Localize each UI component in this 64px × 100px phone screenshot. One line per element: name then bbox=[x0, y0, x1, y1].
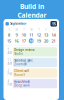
staticText: 12 bbox=[37, 32, 41, 38]
staticText: 11 bbox=[29, 32, 33, 38]
staticText: Client call bbox=[14, 69, 29, 73]
staticText: 17 bbox=[22, 38, 26, 43]
staticText: 11 AM bbox=[7, 58, 11, 65]
button[interactable]: 9 AM bbox=[5, 47, 57, 56]
staticText: September bbox=[10, 22, 26, 25]
button[interactable]: Calendar bbox=[5, 22, 9, 25]
staticText: Standup sync bbox=[14, 59, 32, 62]
staticText: 9 bbox=[15, 32, 17, 38]
staticText: Focus block bbox=[14, 80, 30, 83]
staticText: 4 PM bbox=[7, 79, 11, 87]
staticText: 15 bbox=[52, 21, 56, 26]
staticText: Build in bbox=[20, 2, 44, 11]
button[interactable]: 2 PM bbox=[5, 68, 57, 78]
staticText: 2 PM bbox=[7, 69, 11, 76]
staticText: Calendar bbox=[17, 11, 46, 20]
staticText: 10 bbox=[22, 32, 26, 38]
staticText: T bbox=[38, 28, 39, 32]
staticText: T bbox=[23, 28, 24, 32]
staticText: Deep work bbox=[14, 84, 29, 87]
staticText: S bbox=[8, 28, 9, 32]
staticText: 15 bbox=[7, 38, 11, 43]
staticText: M bbox=[15, 28, 17, 32]
staticText: 13 bbox=[44, 32, 48, 38]
staticText: Zoom call bbox=[14, 63, 27, 66]
staticText: 19 bbox=[37, 38, 41, 43]
staticText: S bbox=[53, 28, 54, 32]
staticText: 18 bbox=[29, 38, 33, 43]
staticText: 14 bbox=[51, 32, 55, 38]
button[interactable]: 11 AM bbox=[5, 58, 57, 67]
staticText: F bbox=[46, 28, 47, 32]
staticText: Room 3 bbox=[14, 73, 25, 77]
staticText: 20 bbox=[44, 38, 48, 43]
staticText: 8 bbox=[8, 32, 10, 38]
staticText: Studio bbox=[14, 52, 23, 55]
button[interactable]: 4 PM bbox=[5, 79, 57, 88]
staticText: 16 bbox=[14, 38, 18, 43]
staticText: Design review bbox=[14, 48, 34, 52]
staticText: W bbox=[30, 28, 32, 32]
button[interactable]: Today bbox=[50, 21, 57, 27]
staticText: 21 bbox=[51, 38, 55, 43]
staticText: 9 AM bbox=[7, 48, 11, 55]
